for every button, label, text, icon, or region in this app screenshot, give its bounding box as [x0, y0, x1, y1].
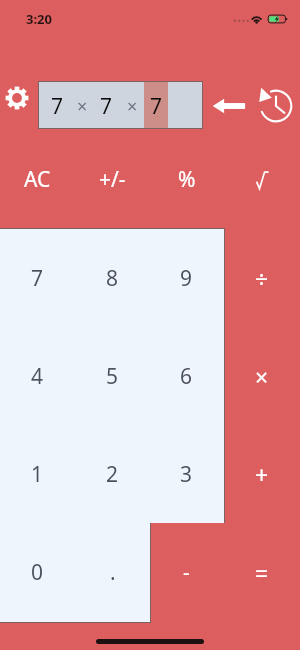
- button[interactable]: 9: [149, 229, 224, 327]
- button[interactable]: +/-: [75, 153, 150, 205]
- button[interactable]: 0: [0, 523, 75, 621]
- button[interactable]: AC: [0, 153, 75, 205]
- staticText: ×: [255, 361, 269, 392]
- button[interactable]: Backspace: [208, 94, 248, 118]
- button[interactable]: History: [256, 86, 296, 126]
- staticText: ×: [127, 94, 138, 119]
- staticText: +: [255, 459, 269, 490]
- button[interactable]: 1: [0, 425, 75, 523]
- button[interactable]: 3: [149, 425, 224, 523]
- button[interactable]: Settings: [4, 85, 30, 111]
- staticText: 6: [180, 362, 193, 391]
- button[interactable]: ×: [224, 327, 299, 425]
- staticText: ×: [77, 94, 88, 119]
- staticText: 0: [31, 558, 44, 587]
- button[interactable]: 2: [75, 425, 150, 523]
- staticText: 8: [106, 264, 119, 293]
- staticText: 7: [150, 92, 163, 121]
- staticText: 1: [31, 460, 44, 489]
- staticText: 3:20: [26, 10, 52, 28]
- staticText: 9: [180, 264, 193, 293]
- button[interactable]: 6: [149, 327, 224, 425]
- button[interactable]: ÷: [224, 229, 299, 327]
- button[interactable]: Square root: [224, 153, 299, 205]
- button[interactable]: .: [75, 523, 150, 621]
- button[interactable]: =: [224, 523, 299, 621]
- staticText: -: [183, 558, 190, 587]
- button[interactable]: 7: [38, 81, 203, 129]
- button[interactable]: 8: [75, 229, 150, 327]
- staticText: %: [178, 165, 196, 194]
- staticText: AC: [24, 165, 51, 194]
- button[interactable]: +: [224, 425, 299, 523]
- button[interactable]: 4: [0, 327, 75, 425]
- button[interactable]: %: [149, 153, 224, 205]
- button[interactable]: 7: [0, 229, 75, 327]
- button[interactable]: 5: [75, 327, 150, 425]
- staticText: 3: [180, 460, 193, 489]
- staticText: 4: [31, 362, 44, 391]
- staticText: =: [255, 557, 269, 588]
- staticText: 7: [51, 92, 64, 121]
- button[interactable]: -: [149, 523, 224, 621]
- staticText: 2: [106, 460, 119, 489]
- staticText: 7: [31, 264, 44, 293]
- staticText: +/-: [99, 165, 126, 194]
- staticText: 5: [106, 362, 119, 391]
- staticText: .: [110, 558, 116, 587]
- staticText: 7: [100, 92, 113, 121]
- staticText: ÷: [255, 263, 269, 294]
